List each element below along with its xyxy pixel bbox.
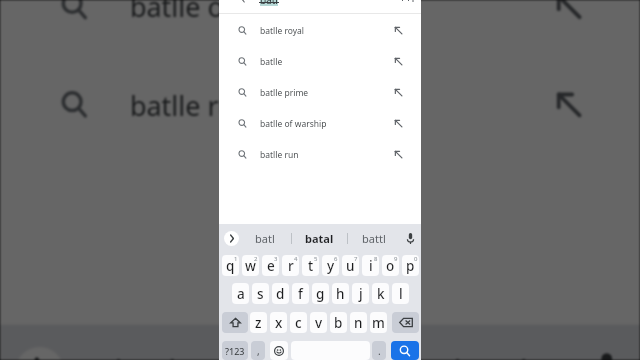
button[interactable]: batlle royal — [219, 15, 421, 46]
button[interactable]: batal — [231, 325, 406, 360]
staticText: m — [372, 314, 385, 332]
button[interactable]: batl — [63, 325, 228, 360]
button[interactable]: k — [372, 283, 389, 304]
staticText: 9 — [394, 255, 398, 263]
staticText: o — [386, 257, 395, 275]
button[interactable]: m — [370, 312, 387, 333]
staticText: d — [276, 285, 285, 303]
staticText: s — [257, 285, 264, 303]
staticText: batlle run — [130, 87, 253, 125]
staticText: 0 — [414, 255, 418, 263]
button[interactable]: batlle prime — [219, 77, 421, 108]
button[interactable]: More suggestions — [16, 347, 63, 360]
button[interactable]: e — [262, 255, 279, 276]
button[interactable]: v — [310, 312, 327, 333]
staticText: 6 — [334, 255, 338, 263]
staticText: 2 — [254, 255, 258, 263]
button[interactable]: l — [392, 283, 409, 304]
button[interactable]: u — [342, 255, 359, 276]
staticText: c — [295, 314, 302, 332]
staticText: 8 — [374, 255, 378, 263]
button[interactable]: battl — [409, 325, 570, 360]
button[interactable]: n — [350, 312, 367, 333]
staticText: . — [378, 344, 381, 358]
staticText: x — [275, 314, 283, 332]
button[interactable]: f — [292, 283, 309, 304]
button[interactable]: w — [242, 255, 259, 276]
staticText: i — [369, 257, 373, 275]
button[interactable]: a — [232, 283, 249, 304]
button[interactable]: More suggestions — [224, 231, 239, 246]
button[interactable]: d — [272, 283, 289, 304]
button[interactable]: Clear query — [397, 0, 413, 4]
button[interactable]: battl — [348, 224, 399, 252]
button[interactable]: batal — [292, 224, 347, 252]
staticText: l — [399, 285, 403, 303]
staticText: ?123 — [225, 345, 245, 357]
button[interactable]: Voice search — [405, 0, 421, 4]
staticText: j — [359, 285, 363, 303]
button[interactable]: p — [402, 255, 419, 276]
button[interactable]: . — [372, 341, 386, 360]
button[interactable]: h — [332, 283, 349, 304]
staticText: k — [377, 285, 385, 303]
staticText: batl — [255, 231, 275, 246]
button[interactable]: batlle run — [219, 139, 421, 170]
button[interactable]: Back — [235, 0, 249, 4]
staticText: batlle — [260, 56, 283, 68]
staticText: t — [308, 257, 314, 275]
button[interactable]: Voice input — [399, 224, 421, 252]
staticText: 1 — [234, 255, 238, 263]
staticText: 7 — [354, 255, 358, 263]
staticText: batal — [305, 231, 334, 246]
staticText: w — [245, 257, 256, 275]
staticText: 3 — [274, 255, 278, 263]
button[interactable]: j — [352, 283, 369, 304]
button[interactable]: batlle of warship — [0, 0, 640, 55]
button[interactable]: y — [322, 255, 339, 276]
staticText: v — [315, 314, 323, 332]
button[interactable]: , — [251, 341, 265, 360]
button[interactable]: s — [252, 283, 269, 304]
staticText: f — [298, 285, 303, 303]
button[interactable]: Voice input — [570, 325, 640, 360]
staticText: batlle run — [260, 149, 299, 161]
staticText: e — [267, 257, 275, 275]
button[interactable]: z — [250, 312, 267, 333]
button[interactable]: batlle run — [0, 55, 640, 154]
button[interactable]: Backspace — [392, 312, 419, 333]
staticText: batal — [272, 347, 364, 360]
button[interactable]: c — [290, 312, 307, 333]
button[interactable]: b — [330, 312, 347, 333]
button[interactable]: i — [362, 255, 379, 276]
button[interactable]: Emoji — [270, 341, 288, 360]
staticText: battl — [453, 347, 529, 360]
button[interactable]: q — [222, 255, 239, 276]
staticText: 4 — [294, 255, 298, 263]
staticText: q — [226, 257, 235, 275]
staticText: batl — [114, 347, 177, 360]
button[interactable]: batl — [239, 224, 291, 252]
button[interactable]: t — [302, 255, 319, 276]
staticText: y — [327, 257, 335, 275]
button[interactable]: Search — [391, 341, 419, 360]
staticText: , — [257, 344, 260, 358]
staticText: z — [255, 314, 262, 332]
staticText: b — [334, 314, 343, 332]
button[interactable]: batlle of warship — [219, 108, 421, 139]
staticText: batl — [260, 0, 278, 6]
staticText: a — [237, 285, 245, 303]
button[interactable]: batlle — [219, 46, 421, 77]
button[interactable]: Shift — [222, 312, 248, 333]
button[interactable]: ?123 — [222, 341, 248, 360]
button[interactable]: g — [312, 283, 329, 304]
button[interactable]: x — [270, 312, 287, 333]
button[interactable]: r — [282, 255, 299, 276]
staticText: h — [336, 285, 345, 303]
staticText: batlle of warship — [130, 0, 342, 27]
staticText: g — [316, 285, 325, 303]
staticText: u — [346, 257, 355, 275]
button[interactable]: o — [382, 255, 399, 276]
staticText: n — [354, 314, 363, 332]
